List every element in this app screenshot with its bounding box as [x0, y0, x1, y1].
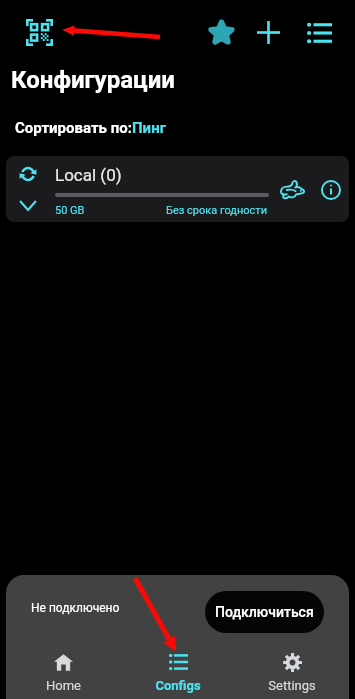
staticText: Конфигурации [11, 66, 175, 94]
staticText: Пинг [132, 119, 166, 137]
button[interactable]: Scan QR code [22, 15, 57, 50]
staticText: Configs [155, 678, 201, 693]
button[interactable]: Add configuration [250, 14, 286, 50]
button[interactable]: Configs [121, 649, 235, 699]
staticText: Не подключено [31, 601, 120, 615]
button[interactable]: Подключиться [205, 591, 324, 633]
button[interactable]: More options [301, 14, 338, 51]
staticText: Local (0) [55, 165, 122, 185]
button[interactable]: Speed test [276, 174, 307, 205]
staticText: Подключиться [215, 604, 314, 620]
button[interactable]: Home [6, 649, 121, 699]
button[interactable]: Information [316, 175, 346, 205]
button[interactable]: Expand [13, 190, 43, 220]
staticText: Сортировать по: [15, 119, 132, 137]
button[interactable]: Сортировать по: [15, 119, 166, 137]
staticText: Без срока годности [166, 204, 267, 217]
staticText: 50 GB [55, 204, 85, 217]
button[interactable]: Refresh [13, 159, 43, 189]
staticText: Settings [268, 678, 316, 693]
button[interactable]: Refresh [6, 156, 349, 222]
button[interactable]: Favorites [203, 14, 239, 50]
staticText: Home [46, 678, 81, 693]
button[interactable]: Settings [235, 649, 349, 699]
